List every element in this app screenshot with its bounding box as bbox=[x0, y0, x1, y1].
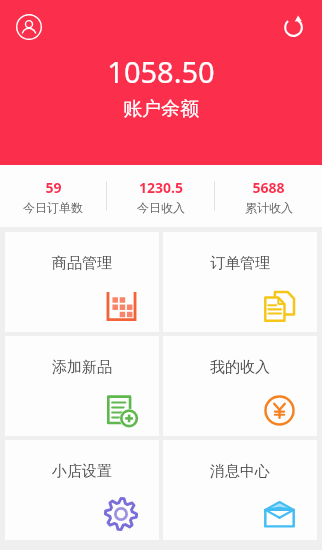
button[interactable]: 添加新品 bbox=[5, 336, 159, 436]
button[interactable]: Profile bbox=[10, 8, 48, 46]
staticText: 添加新品 bbox=[52, 358, 112, 377]
staticText: 小店设置 bbox=[52, 462, 112, 481]
button[interactable]: 我的收入 bbox=[163, 336, 317, 436]
staticText: 今日收入 bbox=[137, 200, 185, 215]
button[interactable]: Refresh bbox=[276, 10, 310, 44]
button[interactable]: 59 bbox=[0, 178, 106, 215]
button[interactable]: 5688 bbox=[215, 178, 322, 215]
staticText: 订单管理 bbox=[210, 254, 270, 273]
button[interactable]: 1230.5 bbox=[107, 178, 214, 215]
staticText: 今日订单数 bbox=[23, 200, 83, 215]
staticText: 59 bbox=[45, 178, 62, 197]
staticText: 累计收入 bbox=[245, 200, 293, 215]
staticText: 我的收入 bbox=[210, 358, 270, 377]
button[interactable]: 订单管理 bbox=[163, 232, 317, 332]
button[interactable]: 商品管理 bbox=[5, 232, 159, 332]
staticText: 1230.5 bbox=[139, 178, 183, 197]
staticText: 账户余额 bbox=[123, 97, 199, 121]
button[interactable]: 小店设置 bbox=[5, 440, 159, 540]
staticText: 商品管理 bbox=[52, 254, 112, 273]
button[interactable]: 消息中心 bbox=[163, 440, 317, 540]
staticText: 消息中心 bbox=[210, 462, 270, 481]
staticText: 5688 bbox=[252, 178, 285, 197]
staticText: 1058.50 bbox=[107, 52, 215, 91]
